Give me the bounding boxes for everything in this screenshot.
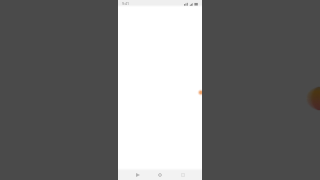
button[interactable]: Home (151, 170, 169, 180)
button[interactable]: Back (129, 170, 147, 180)
staticText: 9:41 (122, 1, 130, 6)
button[interactable]: Recent apps (174, 170, 192, 180)
button[interactable]: Compose (192, 87, 202, 98)
